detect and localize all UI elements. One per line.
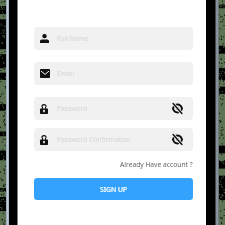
button[interactable]: Full Name	[34, 27, 193, 50]
button[interactable]: Password Confirmation	[34, 128, 193, 151]
staticText: Password	[57, 104, 88, 113]
button[interactable]: Show password	[172, 104, 183, 113]
button[interactable]: Email	[34, 62, 193, 85]
staticText: Password Confirmation	[57, 135, 131, 144]
button[interactable]: Show password	[172, 135, 183, 144]
button[interactable]: Password	[34, 97, 193, 120]
button[interactable]: Already Have account ?	[120, 160, 193, 169]
button[interactable]: SIGN UP	[34, 178, 193, 200]
staticText: Email	[57, 69, 75, 78]
staticText: SIGN UP	[100, 185, 127, 194]
staticText: Full Name	[57, 34, 89, 43]
